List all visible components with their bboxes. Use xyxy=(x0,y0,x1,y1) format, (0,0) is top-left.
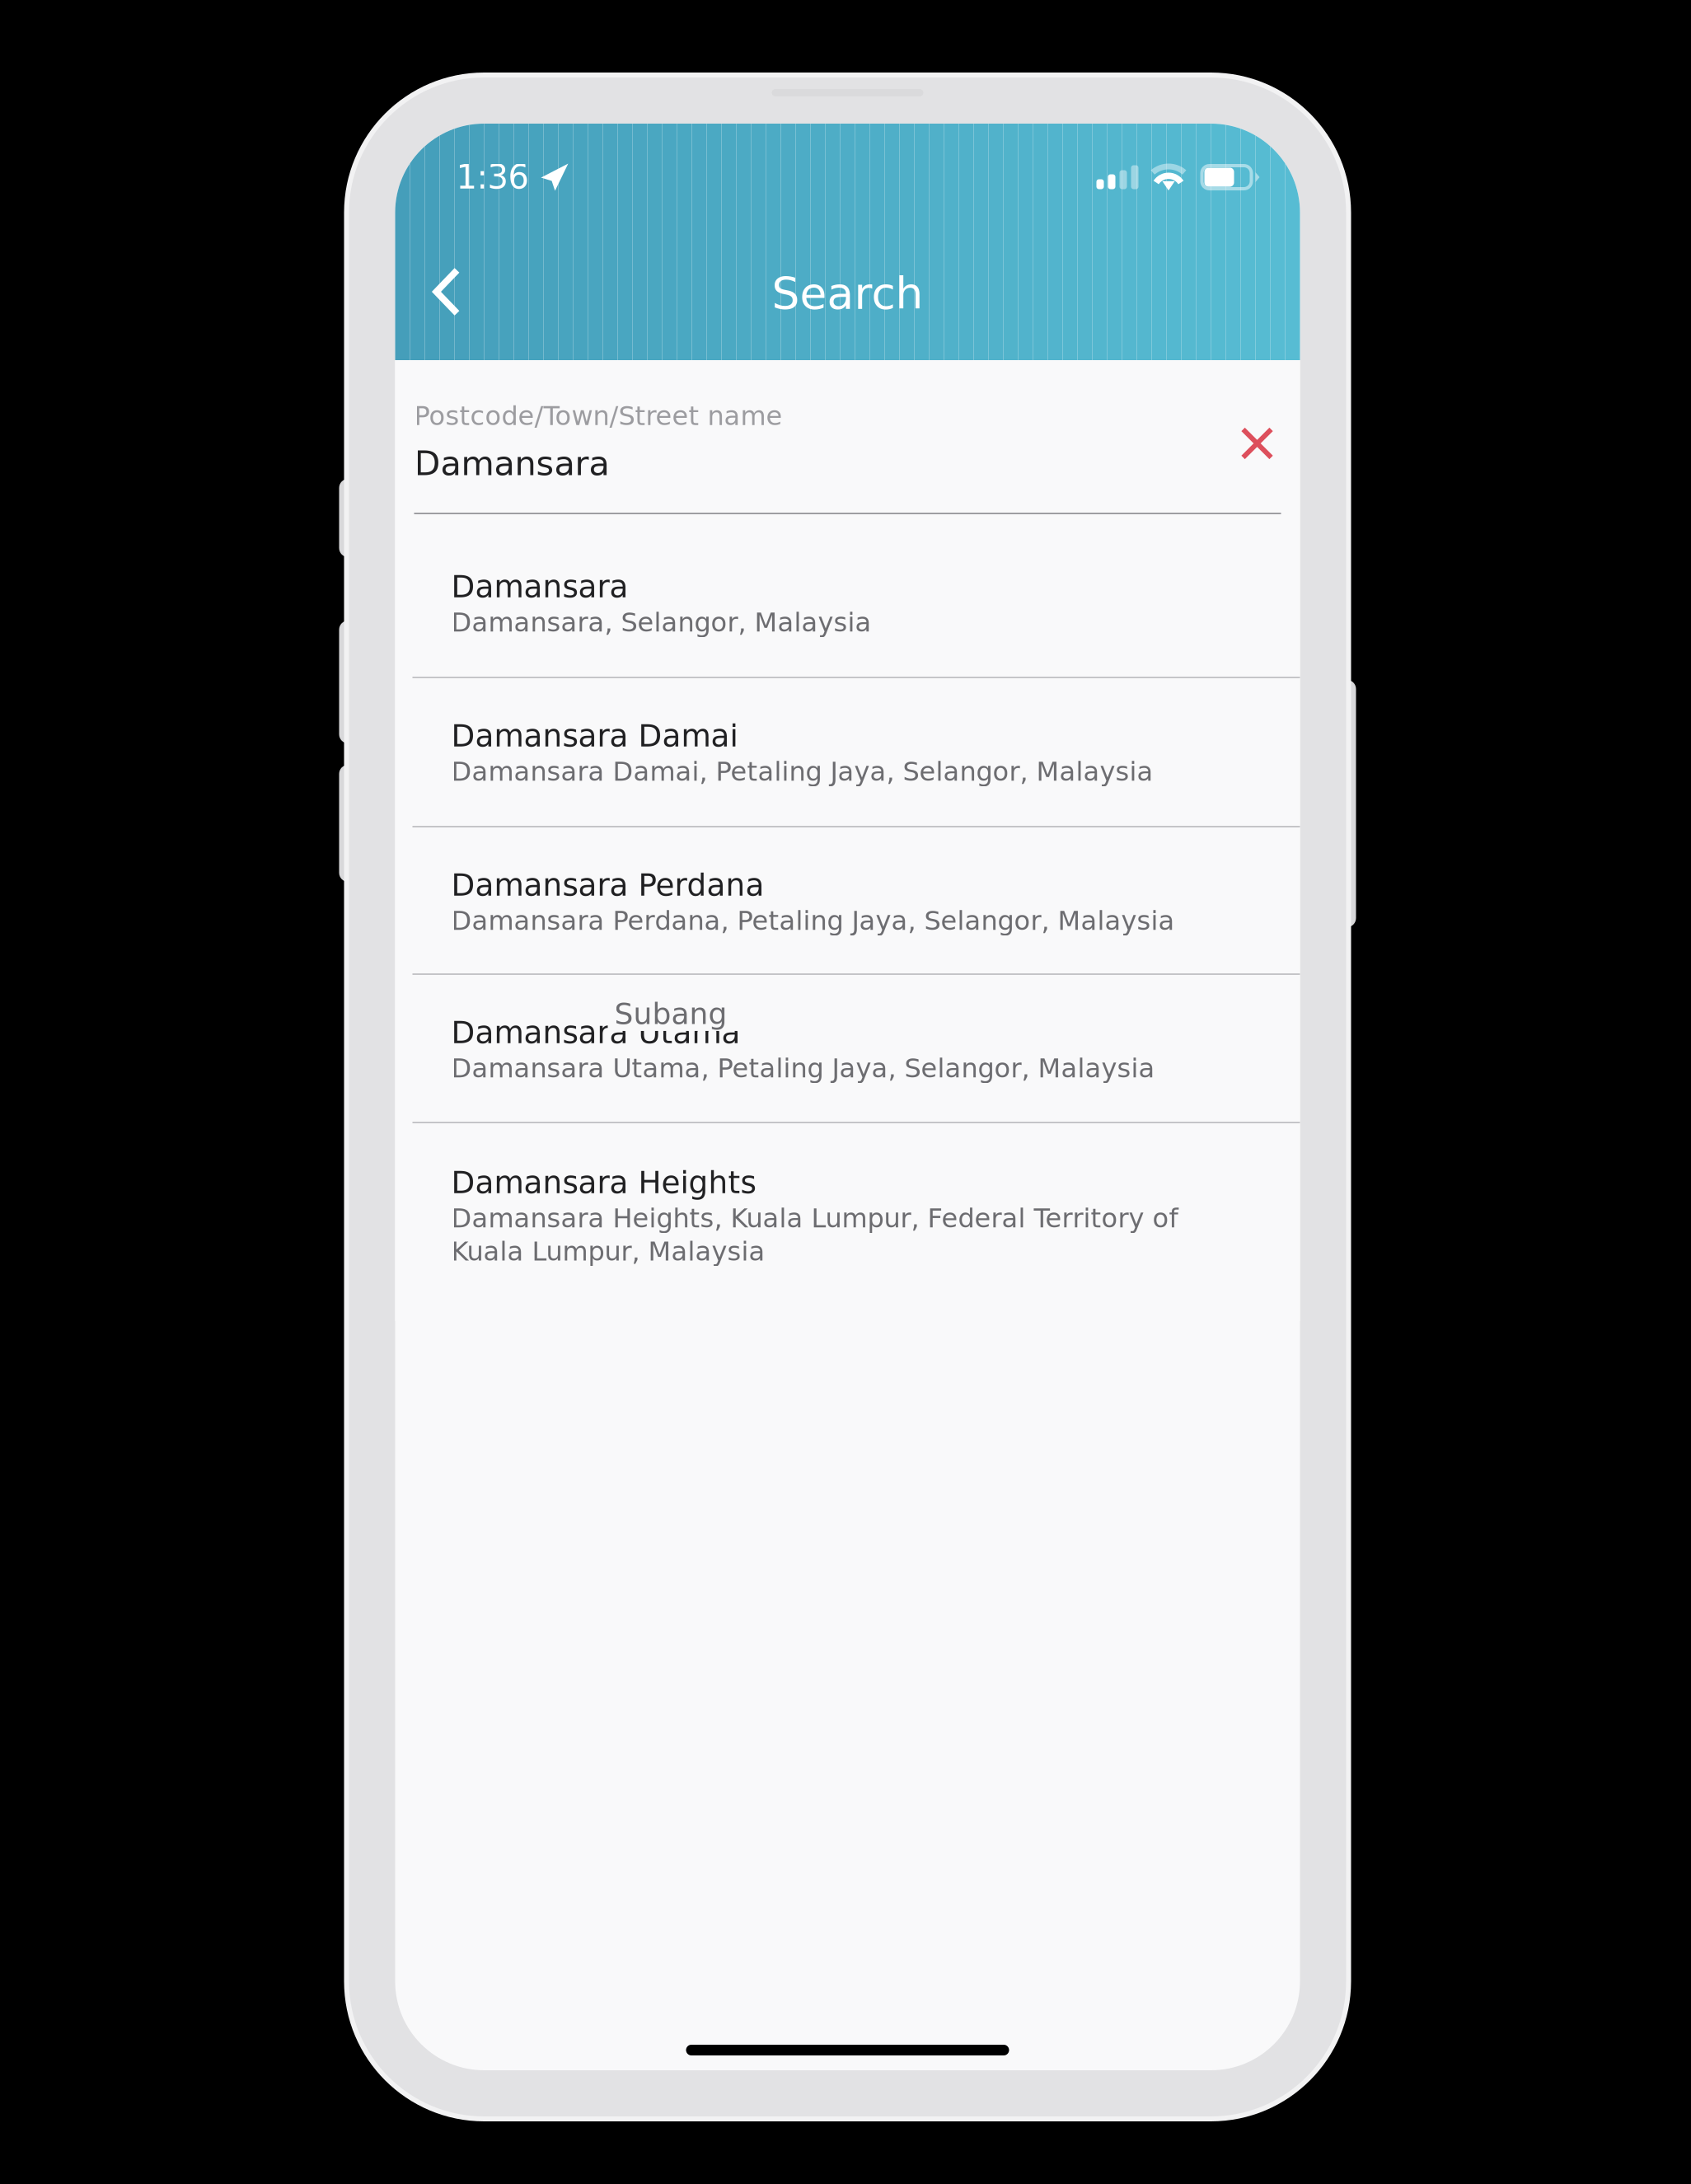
staticText: Damansara Heights xyxy=(451,1165,756,1200)
staticText: Damansara xyxy=(414,444,609,483)
staticText: Damansara Utama, Petaling Jaya, Selangor… xyxy=(451,1053,1155,1084)
staticText: Damansara Damai, Petaling Jaya, Selangor… xyxy=(451,756,1153,787)
staticText: Damansara Perdana, Petaling Jaya, Selang… xyxy=(451,905,1175,936)
button[interactable]: Clear search text xyxy=(1214,401,1300,486)
staticText: Damansara Utama xyxy=(451,1015,740,1050)
staticText: Search xyxy=(772,268,923,319)
staticText: Damansara Heights, Kuala Lumpur, Federal… xyxy=(451,1203,1178,1267)
staticText: Subang xyxy=(614,996,727,1031)
staticText: Damansara Damai xyxy=(451,718,738,754)
staticText: Postcode/Town/Street name xyxy=(414,401,782,431)
staticText: Damansara Perdana xyxy=(451,867,764,903)
staticText: Damansara, Selangor, Malaysia xyxy=(451,607,871,638)
staticText: Damansara xyxy=(451,569,628,605)
button[interactable]: Back xyxy=(407,255,486,329)
staticText: 1:36 xyxy=(456,158,529,196)
